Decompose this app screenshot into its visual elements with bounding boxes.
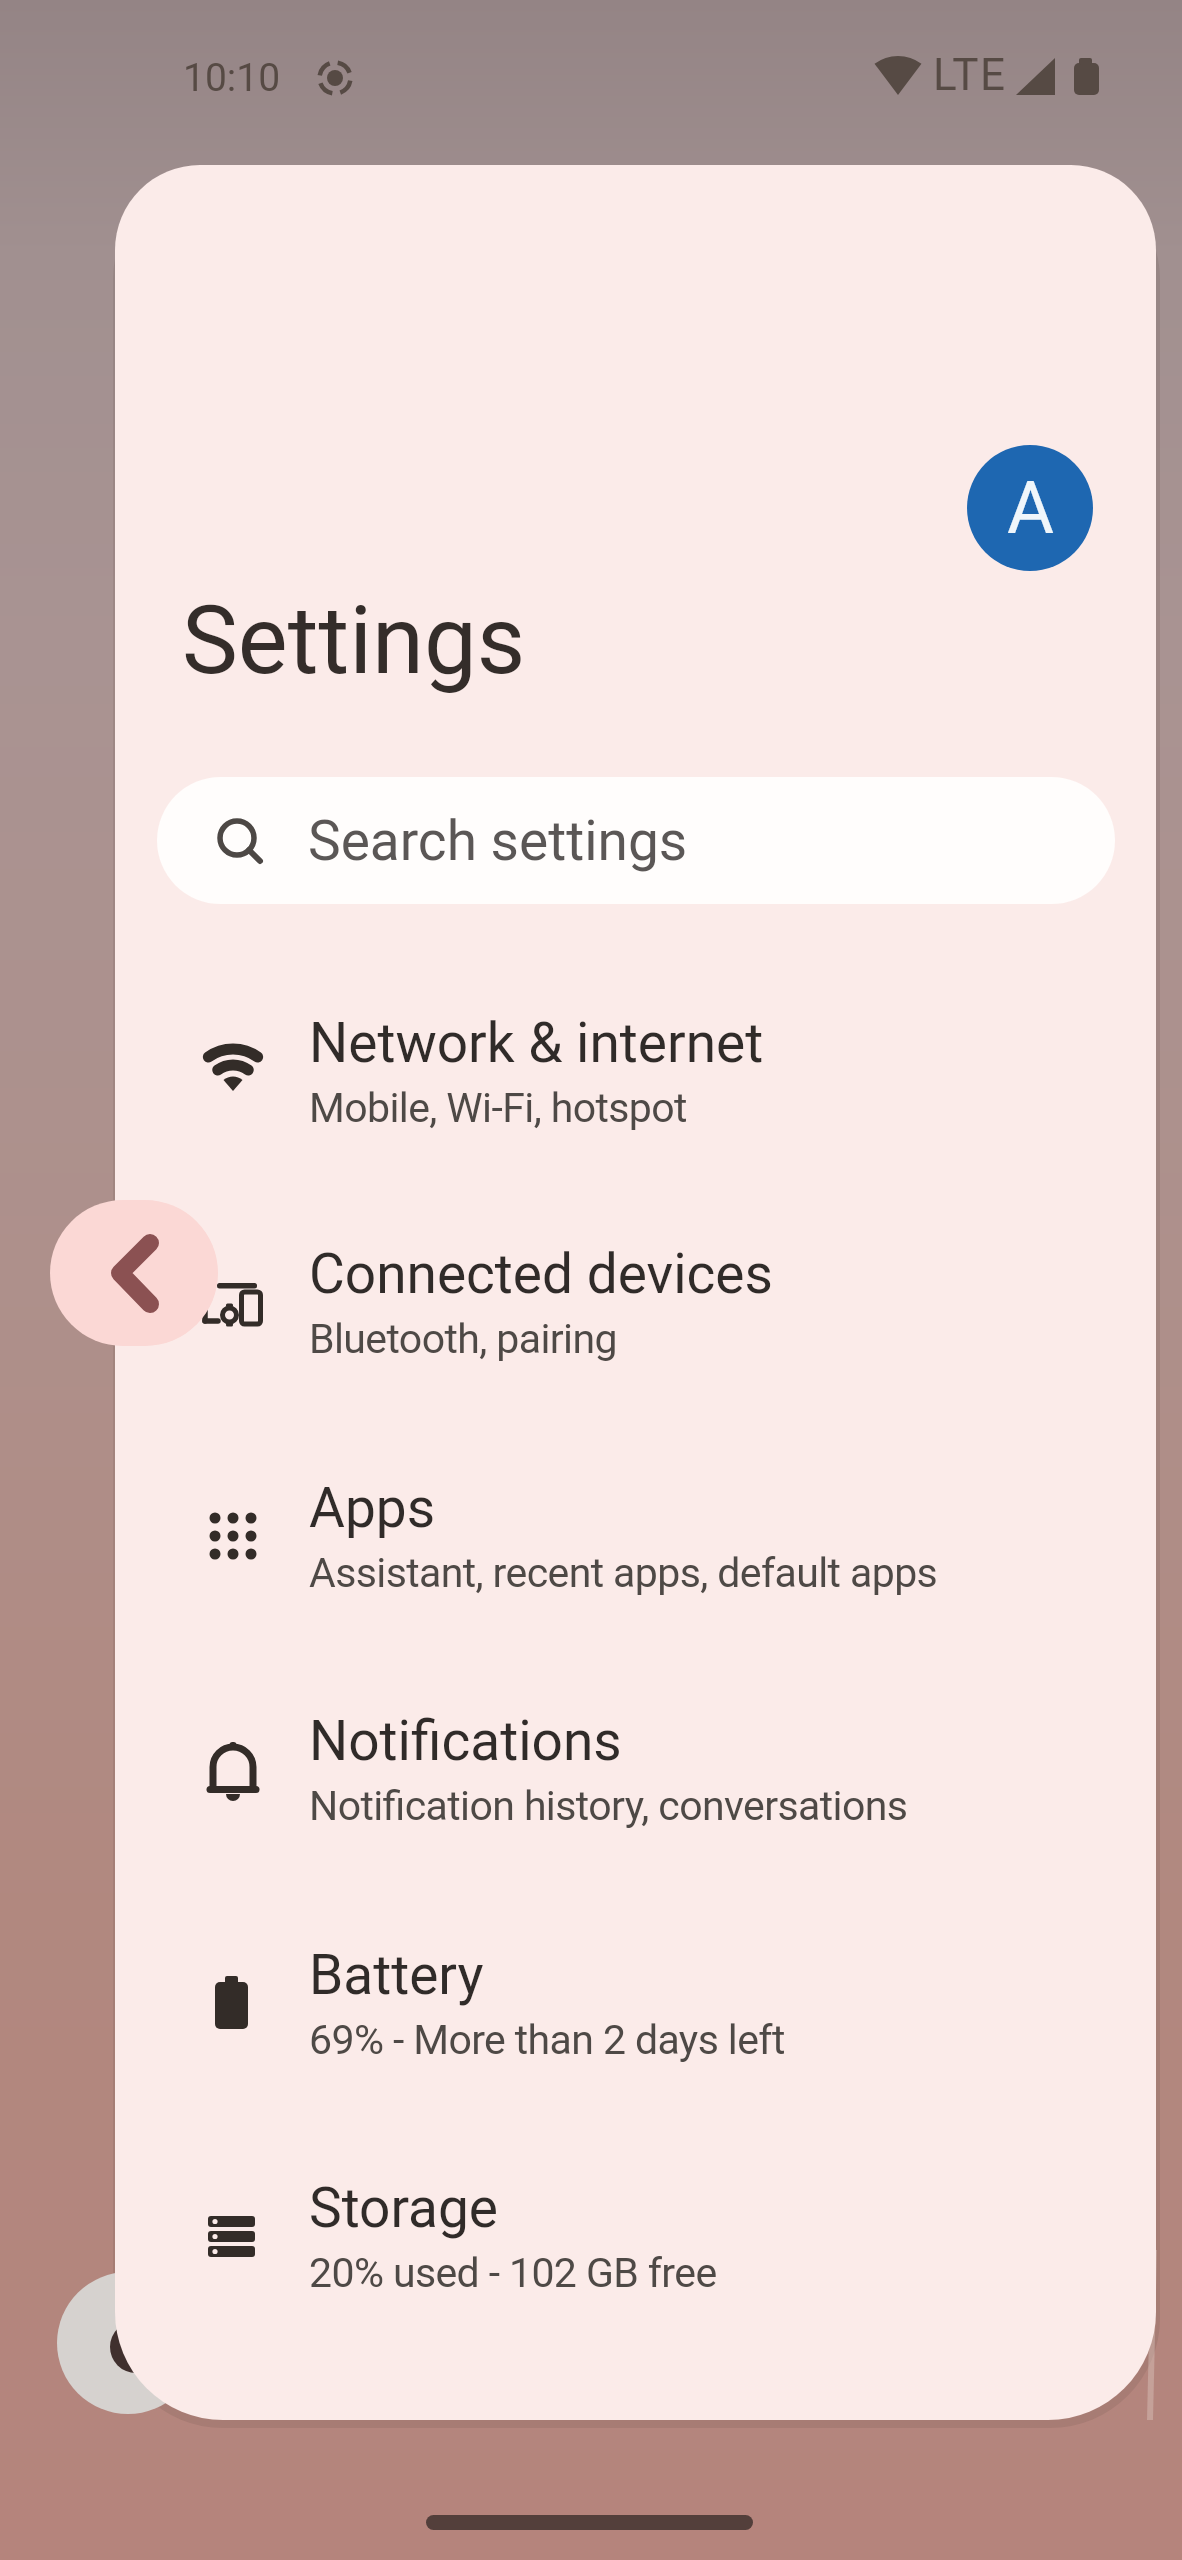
staticText: Notification history, conversations [309, 1782, 908, 1830]
staticText: 20% used - 102 GB free [309, 2249, 717, 2297]
button[interactable]: Storage [115, 2122, 1156, 2355]
staticText: Mobile, Wi-Fi, hotspot [309, 1084, 687, 1132]
staticText: Network & internet [309, 1011, 764, 1075]
staticText: Storage [309, 2176, 499, 2240]
button[interactable]: Notifications [115, 1655, 1156, 1888]
staticText: Settings [182, 586, 526, 696]
button[interactable] [426, 2515, 753, 2530]
staticText: 69% - More than 2 days left [309, 2016, 785, 2064]
staticText: Assistant, recent apps, default apps [309, 1549, 938, 1597]
staticText: Search settings [308, 809, 688, 873]
button[interactable]: Network & internet [115, 957, 1156, 1190]
staticText: Connected devices [309, 1242, 773, 1306]
staticText: Apps [309, 1476, 436, 1540]
staticText: A [1007, 466, 1054, 550]
staticText: 10:10 [183, 55, 281, 101]
button[interactable]: Battery [115, 1889, 1156, 2122]
staticText: Notifications [309, 1709, 622, 1773]
button[interactable]: Connected devices [115, 1188, 1156, 1421]
staticText: Battery [309, 1943, 484, 2007]
button[interactable]: Apps [115, 1422, 1156, 1655]
staticText: LTE [933, 49, 1007, 101]
button[interactable]: Search settings [157, 777, 1115, 904]
button[interactable] [50, 1200, 218, 1346]
button[interactable]: A [967, 445, 1093, 571]
staticText: Bluetooth, pairing [309, 1315, 617, 1363]
